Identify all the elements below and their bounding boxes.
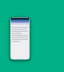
button[interactable]: [0, 0, 64, 72]
